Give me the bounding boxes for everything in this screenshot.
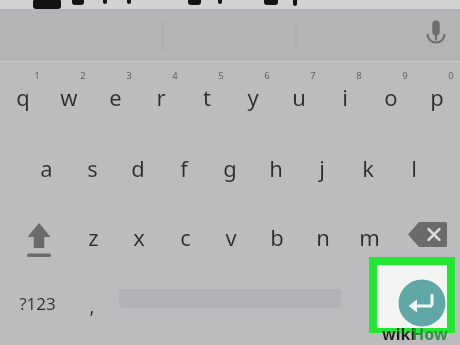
staticText: d	[131, 153, 145, 183]
staticText: How	[412, 323, 448, 345]
staticText: w	[60, 82, 78, 112]
staticText: c	[180, 222, 191, 252]
button[interactable]: q	[0, 78, 47, 115]
staticText: e	[109, 82, 122, 112]
button[interactable]: 1	[26, 67, 47, 83]
button[interactable]: i	[321, 78, 369, 115]
button[interactable]: 3	[118, 67, 139, 83]
button[interactable]: o	[367, 78, 415, 115]
button[interactable]: l	[390, 149, 438, 186]
button[interactable]: s	[68, 149, 116, 186]
staticText: 4	[172, 69, 178, 82]
staticText: 1	[34, 69, 40, 82]
button[interactable]: 5	[210, 67, 231, 83]
button[interactable]: Shift	[12, 210, 66, 262]
staticText: s	[87, 153, 98, 183]
button[interactable]: z	[69, 218, 117, 255]
staticText: v	[225, 222, 237, 252]
button[interactable]: Backspace	[405, 218, 451, 252]
staticText: ,	[89, 293, 95, 319]
staticText: j	[319, 153, 325, 183]
button[interactable]: Enter	[369, 257, 455, 333]
button[interactable]: g	[206, 149, 254, 186]
button[interactable]: 8	[348, 67, 369, 83]
button[interactable]: ?123	[19, 289, 56, 318]
staticText: 9	[402, 69, 408, 82]
button[interactable]: a	[22, 149, 70, 186]
staticText: u	[292, 82, 306, 112]
button[interactable]: 6	[256, 67, 277, 83]
button[interactable]: j	[298, 149, 346, 186]
staticText: 7	[310, 69, 316, 82]
button[interactable]: p	[413, 78, 460, 115]
staticText: k	[362, 153, 374, 183]
staticText: f	[180, 153, 188, 183]
button[interactable]: k	[344, 149, 392, 186]
button[interactable]	[0, 9, 460, 62]
button[interactable]: 4	[164, 67, 185, 83]
button[interactable]: 9	[394, 67, 415, 83]
staticText: g	[223, 153, 237, 183]
button[interactable]: b	[253, 218, 301, 255]
button[interactable]: 7	[302, 67, 323, 83]
button[interactable]: w	[45, 78, 93, 115]
button[interactable]: h	[252, 149, 300, 186]
staticText: wiki	[382, 323, 416, 345]
button[interactable]: v	[207, 218, 255, 255]
button[interactable]: y	[229, 78, 277, 115]
button[interactable]: t	[183, 78, 231, 115]
button[interactable]: 2	[72, 67, 93, 83]
staticText: l	[411, 153, 417, 183]
button[interactable]: c	[161, 218, 209, 255]
staticText: 8	[356, 69, 362, 82]
button[interactable]: Voice input	[418, 16, 454, 52]
staticText: b	[270, 222, 284, 252]
staticText: o	[384, 82, 398, 112]
button[interactable]: x	[115, 218, 163, 255]
staticText: h	[269, 153, 283, 183]
staticText: 2	[80, 69, 86, 82]
button[interactable]: d	[114, 149, 162, 186]
staticText: x	[133, 222, 145, 252]
staticText: 6	[264, 69, 270, 82]
button[interactable]: m	[345, 218, 393, 255]
staticText: a	[40, 153, 53, 183]
staticText: q	[16, 82, 30, 112]
button[interactable]: 0	[440, 67, 460, 83]
staticText: p	[430, 82, 444, 112]
staticText: m	[359, 222, 380, 252]
button[interactable]: u	[275, 78, 323, 115]
staticText: 5	[218, 69, 224, 82]
button[interactable]: f	[160, 149, 208, 186]
button[interactable]: ,	[71, 290, 113, 322]
staticText: 0	[448, 69, 454, 82]
staticText: n	[316, 222, 330, 252]
staticText: y	[247, 82, 259, 112]
button[interactable]: r	[137, 78, 185, 115]
staticText: r	[156, 82, 166, 112]
staticText: i	[342, 82, 348, 112]
button[interactable]: e	[91, 78, 139, 115]
button[interactable]: n	[299, 218, 347, 255]
staticText: z	[88, 222, 99, 252]
staticText: ?123	[19, 292, 56, 315]
staticText: t	[203, 82, 211, 112]
staticText: 3	[126, 69, 132, 82]
